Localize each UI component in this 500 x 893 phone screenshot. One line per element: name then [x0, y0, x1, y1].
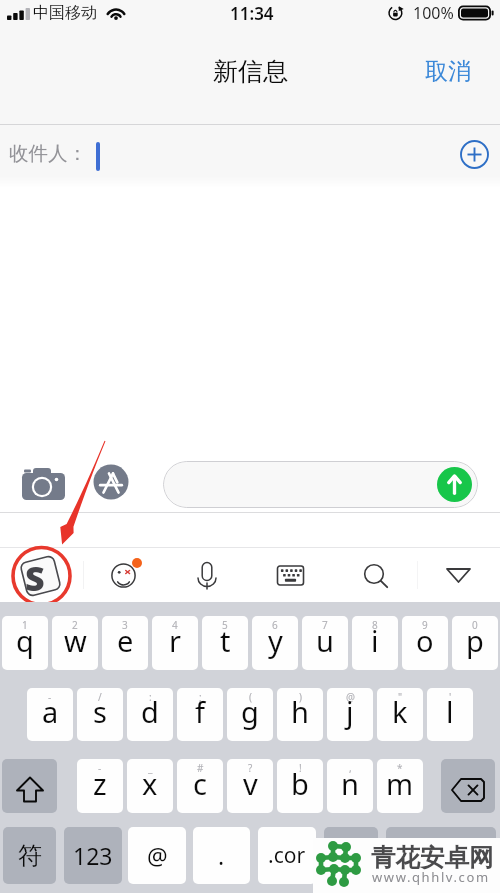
button[interactable]: _ — [127, 759, 173, 813]
staticText: r — [169, 621, 181, 660]
button[interactable]: Add contact — [459, 139, 490, 170]
button[interactable]: @ — [327, 688, 373, 741]
staticText: 收件人： — [9, 141, 87, 166]
staticText: , — [349, 761, 352, 775]
staticText: ? — [248, 761, 253, 775]
staticText: 9 — [422, 618, 428, 632]
button[interactable]: .cor — [258, 827, 316, 884]
staticText: v — [243, 764, 258, 803]
staticText: 1 — [22, 618, 28, 632]
button[interactable]: 3 — [102, 616, 148, 670]
staticText: m — [386, 764, 414, 803]
button[interactable]: . — [193, 827, 250, 884]
button[interactable]: 9 — [402, 616, 448, 670]
button[interactable]: ( — [227, 688, 273, 741]
staticText: 新信息 — [213, 56, 288, 87]
staticText: ( — [249, 690, 252, 704]
staticText: z — [93, 764, 107, 803]
staticText: _ — [148, 761, 153, 775]
button[interactable]: App Store — [90, 462, 132, 504]
staticText: 符 — [18, 841, 42, 871]
staticText: 0 — [472, 618, 478, 632]
button[interactable]: ! — [277, 759, 323, 813]
button[interactable]: # — [177, 759, 223, 813]
button[interactable]: Sogou input method — [8, 548, 73, 602]
button[interactable]: 5 — [202, 616, 248, 670]
staticText: 123 — [73, 840, 113, 871]
button[interactable] — [324, 827, 378, 884]
staticText: 5 — [222, 618, 228, 632]
staticText: i — [371, 621, 379, 660]
button[interactable]: Hide keyboard — [432, 550, 484, 600]
button[interactable]: / — [77, 688, 123, 741]
staticText: 6 — [272, 618, 278, 632]
button[interactable]: Send — [437, 467, 472, 502]
button[interactable]: - — [27, 688, 73, 741]
button[interactable]: , — [327, 759, 373, 813]
button[interactable]: ) — [277, 688, 323, 741]
button[interactable]: 4 — [152, 616, 198, 670]
button[interactable]: 符 — [3, 827, 56, 884]
button[interactable]: 7 — [302, 616, 348, 670]
staticText: 2 — [72, 618, 78, 632]
staticText: : — [149, 690, 152, 704]
staticText: a — [42, 692, 59, 731]
staticText: 11:34 — [230, 2, 274, 25]
staticText: - — [98, 761, 102, 775]
button[interactable]: ? — [227, 759, 273, 813]
staticText: * — [397, 761, 403, 775]
staticText: h — [291, 692, 309, 731]
staticText: 取消 — [425, 57, 471, 86]
button[interactable]: Search — [349, 550, 401, 600]
staticText: .cor — [268, 841, 306, 870]
button[interactable]: Voice input — [181, 550, 233, 600]
staticText: ; — [199, 690, 202, 704]
staticText: j — [346, 692, 354, 731]
staticText: ' — [449, 690, 452, 704]
staticText: g — [241, 692, 259, 731]
staticText: u — [316, 621, 334, 660]
button[interactable]: 0 — [452, 616, 498, 670]
staticText: - — [48, 690, 52, 704]
button[interactable]: ' — [427, 688, 473, 741]
staticText: " — [398, 690, 403, 704]
staticText: 8 — [372, 618, 378, 632]
button[interactable]: 2 — [52, 616, 98, 670]
button[interactable]: : — [127, 688, 173, 741]
button[interactable] — [386, 827, 496, 884]
button[interactable]: 取消 — [409, 49, 500, 94]
button[interactable]: Emoji — [98, 550, 150, 600]
staticText: 7 — [322, 618, 328, 632]
staticText: f — [195, 692, 205, 731]
staticText: n — [341, 764, 359, 803]
button[interactable]: 8 — [352, 616, 398, 670]
button[interactable]: 1 — [2, 616, 48, 670]
staticText: k — [392, 692, 408, 731]
staticText: e — [117, 621, 134, 660]
staticText: o — [416, 621, 434, 660]
staticText: 100% — [413, 2, 454, 24]
button[interactable]: " — [377, 688, 423, 741]
button[interactable]: 123 — [64, 827, 122, 884]
button[interactable]: Switch keyboard — [264, 550, 316, 600]
staticText: 3 — [122, 618, 128, 632]
button[interactable]: Shift — [2, 759, 57, 813]
staticText: w — [64, 621, 87, 660]
staticText: # — [197, 761, 204, 775]
button[interactable]: Send — [163, 461, 478, 508]
staticText: y — [268, 621, 283, 660]
button[interactable]: Backspace — [441, 759, 495, 813]
staticText: ) — [299, 690, 302, 704]
staticText: t — [220, 621, 231, 660]
staticText: ! — [299, 761, 302, 775]
button[interactable]: ; — [177, 688, 223, 741]
staticText: 中国移动 — [33, 3, 97, 23]
button[interactable]: @ — [128, 827, 186, 884]
staticText: x — [142, 764, 158, 803]
button[interactable]: * — [377, 759, 423, 813]
button[interactable]: - — [77, 759, 123, 813]
staticText: @ — [346, 690, 355, 704]
button[interactable]: 6 — [252, 616, 298, 670]
staticText: d — [141, 692, 159, 731]
button[interactable]: Camera — [20, 465, 67, 500]
